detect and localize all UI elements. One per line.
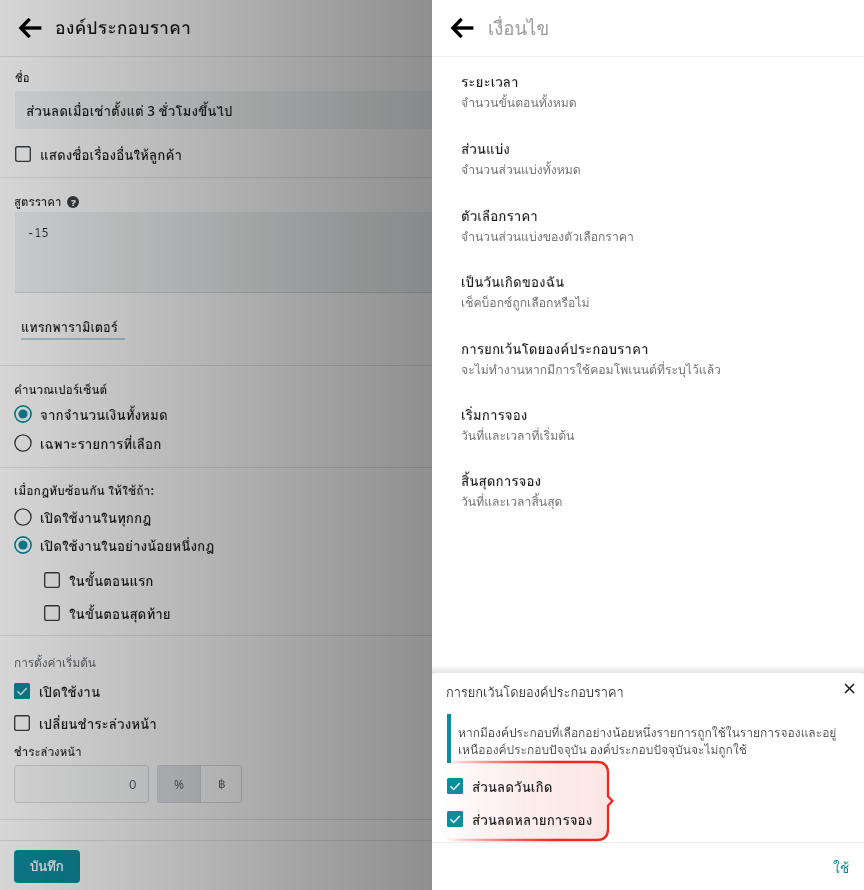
- staticText: ในขั้นตอนสุดท้าย: [69, 603, 171, 624]
- staticText: -15: [27, 224, 49, 240]
- staticText: การยกเว้นโดยองค์ประกอบราคา: [461, 338, 649, 359]
- button[interactable]: แสดงชื่อเรื่องอื่นให้ลูกค้า: [15, 140, 182, 168]
- staticText: ชื่อ: [15, 69, 30, 87]
- button[interactable]: ส่วนลดเมื่อเช่าตั้งแต่ 3 ชั่วโมงขึ้นไป: [15, 91, 447, 129]
- staticText: ชำระล่วงหน้า: [14, 743, 82, 761]
- button[interactable]: -15: [15, 212, 447, 293]
- staticText: ?: [71, 196, 76, 208]
- button[interactable]: Close: [834, 673, 864, 704]
- button[interactable]: เป็นวันเกิดของฉัน: [432, 271, 864, 312]
- staticText: จำนวนส่วนแบ่งทั้งหมด: [461, 160, 581, 179]
- button[interactable]: ในขั้นตอนสุดท้าย: [44, 599, 171, 627]
- staticText: วันที่และเวลาที่เริ่มต้น: [461, 426, 575, 445]
- staticText: คำนวณเปอร์เซ็นต์: [14, 380, 108, 399]
- staticText: ระยะเวลา: [461, 71, 519, 92]
- staticText: แทรกพารามิเตอร์: [21, 317, 118, 337]
- staticText: เช็คบ็อกซ์ถูกเลือกหรือไม่: [461, 293, 590, 312]
- button[interactable]: ระยะเวลา: [432, 71, 864, 112]
- staticText: ส่วนลดหลายการจอง: [472, 809, 593, 830]
- button[interactable]: ฿: [201, 765, 242, 803]
- button[interactable]: การยกเว้นโดยองค์ประกอบราคา: [432, 338, 864, 379]
- staticText: เงื่อนไข: [488, 14, 550, 43]
- staticText: จะไม่ทำงานหากมีการใช้คอมโพเนนต์ที่ระบุไว…: [461, 360, 721, 379]
- staticText: เป็นวันเกิดของฉัน: [461, 271, 565, 292]
- button[interactable]: Back: [11, 8, 51, 48]
- button[interactable]: ส่วนแบ่ง: [432, 138, 864, 179]
- staticText: เฉพาะรายการที่เลือก: [40, 433, 162, 454]
- button[interactable]: ในขั้นตอนแรก: [44, 566, 154, 594]
- staticText: หากมีองค์ประกอบที่เลือกอย่างน้อยหนึ่งราย…: [458, 723, 860, 760]
- button[interactable]: เปิดใช้งาน: [14, 677, 101, 705]
- staticText: วันที่และเวลาสิ้นสุด: [461, 492, 563, 511]
- button[interactable]: บันทึก: [14, 850, 80, 883]
- button[interactable]: Back: [443, 8, 483, 48]
- staticText: สิ้นสุดการจอง: [461, 470, 542, 491]
- staticText: สูตรราคา: [14, 193, 62, 211]
- button[interactable]: ตัวเลือกราคา: [432, 205, 864, 246]
- staticText: เริ่มการจอง: [461, 404, 528, 425]
- staticText: เปิดใช้งานในอย่างน้อยหนึ่งกฎ: [40, 535, 215, 556]
- button[interactable]: จากจำนวนเงินทั้งหมด: [14, 400, 168, 428]
- button[interactable]: เปิดใช้งานในทุกกฎ: [14, 503, 152, 531]
- staticText: ตัวเลือกราคา: [461, 205, 538, 226]
- staticText: จากจำนวนเงินทั้งหมด: [40, 404, 168, 425]
- staticText: แสดงชื่อเรื่องอื่นให้ลูกค้า: [40, 144, 182, 165]
- staticText: บันทึก: [30, 856, 64, 877]
- staticText: จำนวนขั้นตอนทั้งหมด: [461, 93, 577, 112]
- staticText: ใช้: [833, 857, 850, 879]
- staticText: %: [174, 776, 184, 792]
- staticText: องค์ประกอบราคา: [55, 14, 191, 42]
- button[interactable]: ส่วนลดวันเกิด: [447, 772, 553, 800]
- staticText: การตั้งค่าเริ่มต้น: [14, 653, 96, 672]
- staticText: เปิดใช้งานในทุกกฎ: [40, 507, 152, 528]
- button[interactable]: เปิดใช้งานในอย่างน้อยหนึ่งกฎ: [14, 531, 215, 559]
- staticText: ในขั้นตอนแรก: [69, 570, 154, 591]
- button[interactable]: เปลี่ยนชำระล่วงหน้า: [14, 709, 157, 737]
- button[interactable]: สิ้นสุดการจอง: [432, 470, 864, 511]
- button[interactable]: ใช้: [821, 849, 862, 887]
- staticText: ส่วนแบ่ง: [461, 138, 510, 159]
- staticText: 0: [129, 775, 137, 793]
- staticText: เปิดใช้งาน: [39, 681, 101, 702]
- staticText: เปลี่ยนชำระล่วงหน้า: [39, 713, 157, 734]
- staticText: ส่วนลดเมื่อเช่าตั้งแต่ 3 ชั่วโมงขึ้นไป: [26, 100, 233, 121]
- button[interactable]: 0: [14, 765, 149, 803]
- button[interactable]: เริ่มการจอง: [432, 404, 864, 445]
- button[interactable]: %: [157, 765, 200, 803]
- button[interactable]: ส่วนลดหลายการจอง: [447, 805, 593, 833]
- button[interactable]: เฉพาะรายการที่เลือก: [14, 429, 162, 457]
- staticText: เมื่อกฎทับซ้อนกัน ให้ใช้ถ้า:: [14, 481, 154, 500]
- button[interactable]: แทรกพารามิเตอร์: [21, 317, 125, 340]
- staticText: ส่วนลดวันเกิด: [472, 776, 553, 797]
- staticText: จำนวนส่วนแบ่งของตัวเลือกราคา: [461, 227, 634, 246]
- staticText: ฿: [218, 777, 226, 791]
- staticText: การยกเว้นโดยองค์ประกอบราคา: [446, 682, 624, 702]
